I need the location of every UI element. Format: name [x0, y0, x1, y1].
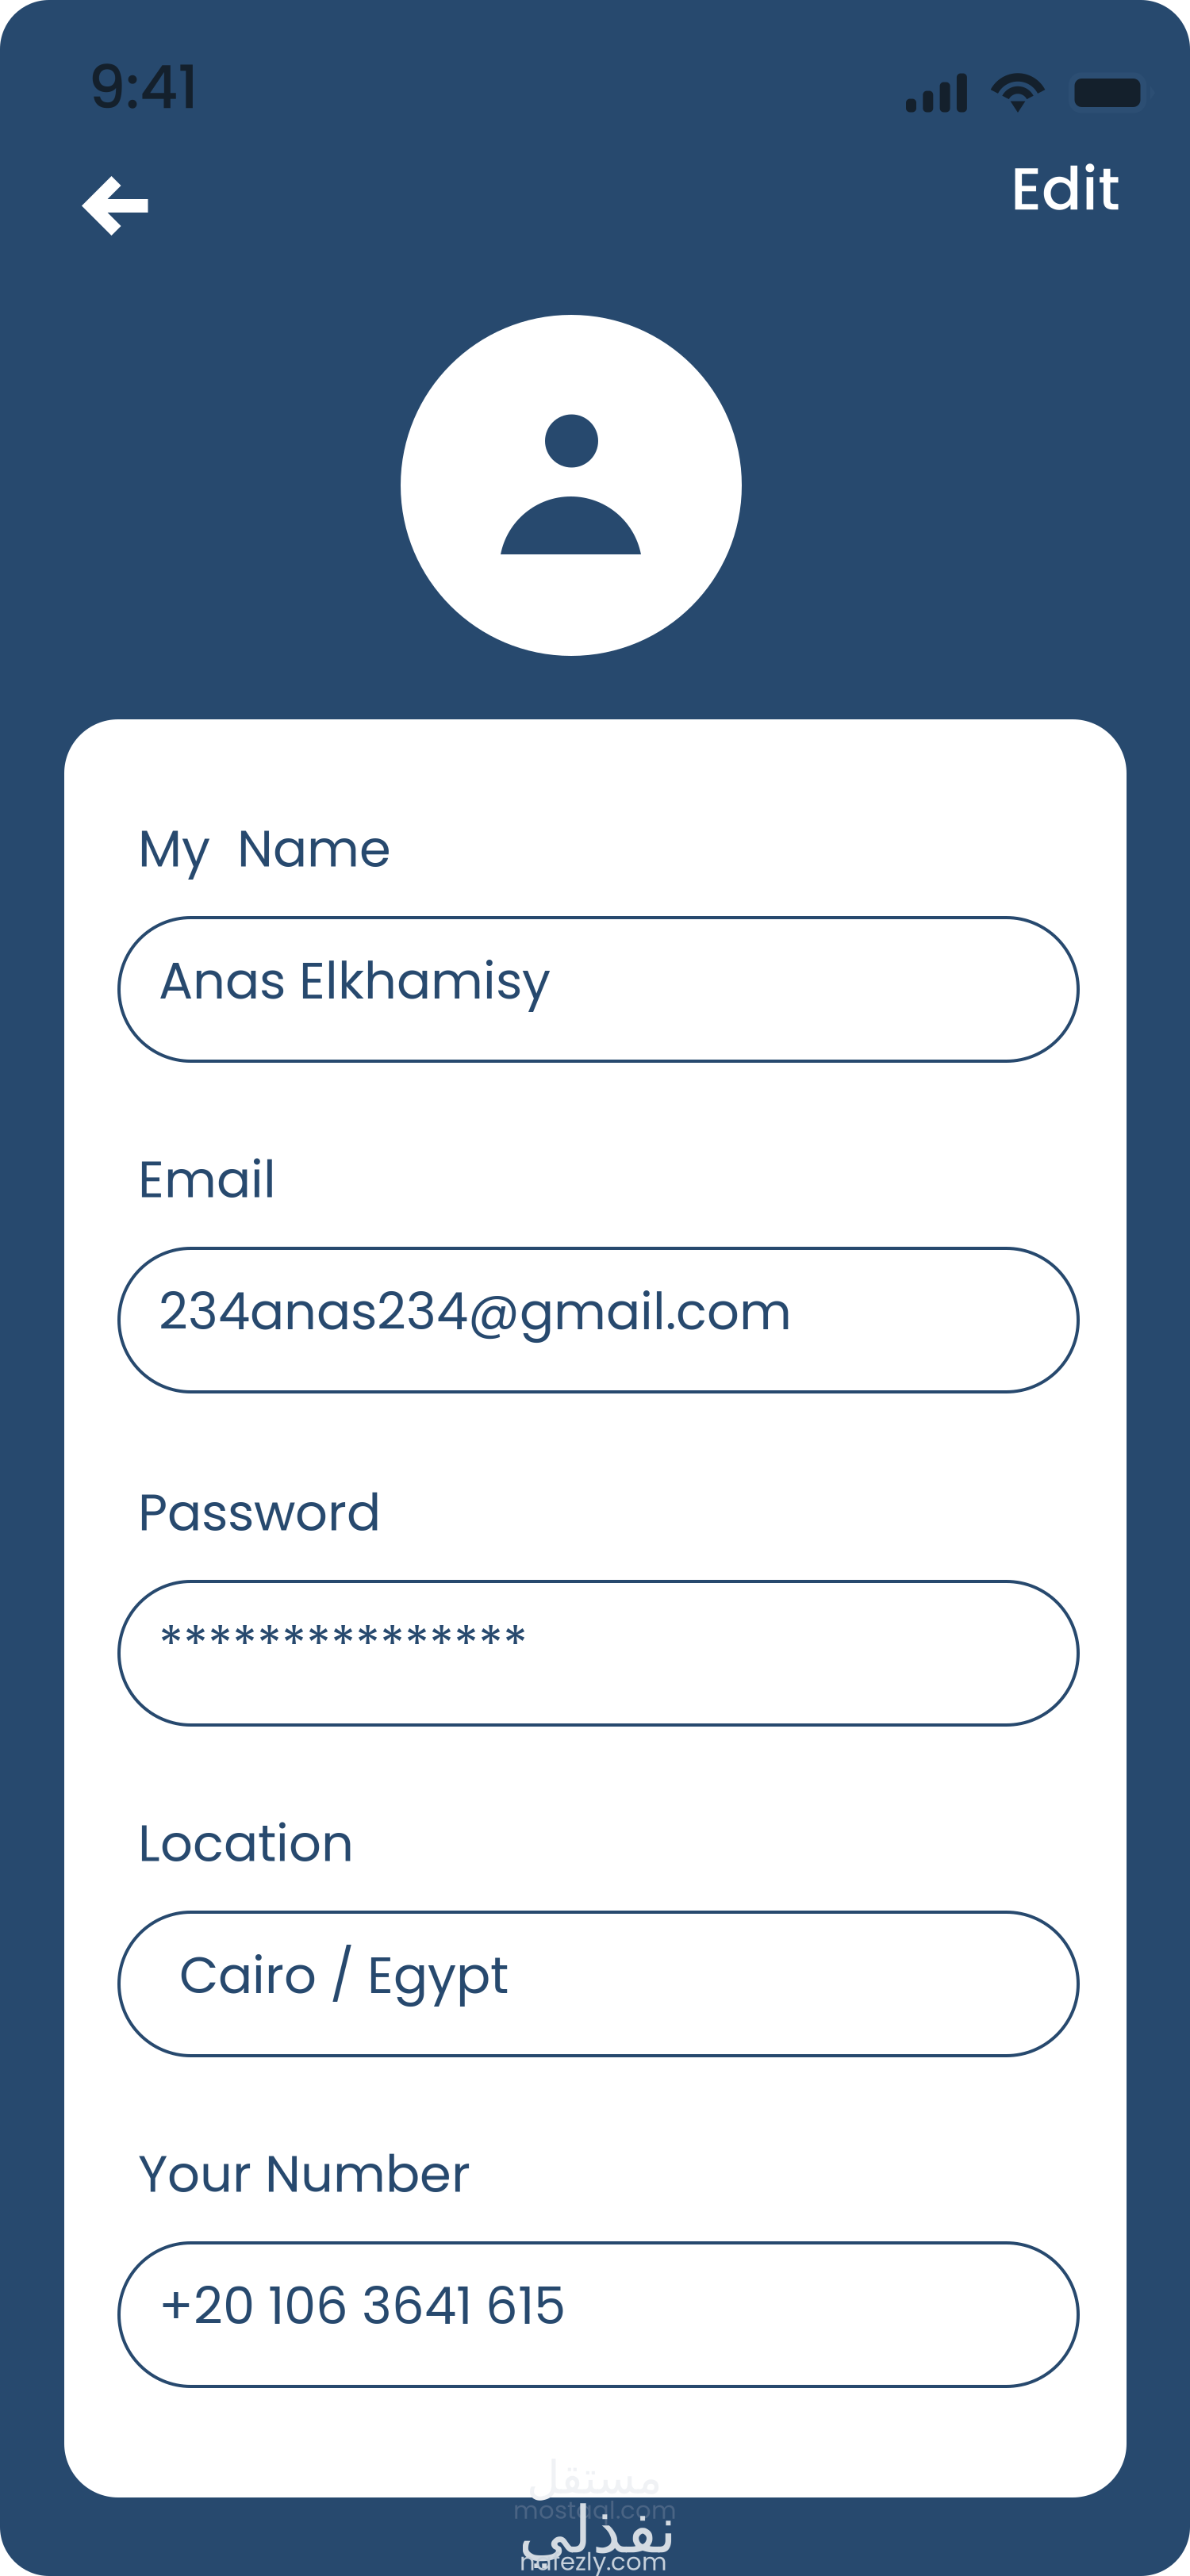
button[interactable]: 234anas234@gmail.com	[119, 1248, 1078, 1392]
button[interactable]: Edit	[962, 133, 1120, 244]
button[interactable]: +20 106 3641 615	[119, 2243, 1078, 2386]
staticText: 234anas234@gmail.com	[159, 1276, 792, 1347]
staticText: My Name	[138, 813, 391, 884]
staticText: Email	[138, 1144, 276, 1215]
staticText: Cairo / Egypt	[179, 1940, 509, 2011]
button[interactable]: Cairo / Egypt	[119, 1912, 1078, 2056]
staticText: مستقل	[526, 2451, 662, 2504]
button[interactable]: ***************	[119, 1581, 1078, 1725]
staticText: 9:41	[88, 46, 198, 129]
staticText: +20 106 3641 615	[159, 2270, 566, 2341]
button[interactable]: Anas Elkhamisy	[119, 918, 1078, 1061]
staticText: Your Number	[138, 2138, 470, 2209]
staticText: Location	[138, 1808, 354, 1879]
staticText: ***************	[159, 1609, 528, 1680]
staticText: mostaql.com	[513, 2493, 677, 2527]
staticText: Edit	[1011, 147, 1120, 230]
staticText: nafezly.com	[520, 2545, 667, 2576]
staticText: Password	[138, 1477, 381, 1548]
staticText: نفذلي	[518, 2492, 677, 2568]
staticText: Anas Elkhamisy	[159, 945, 551, 1016]
button[interactable]: Back	[44, 146, 195, 265]
